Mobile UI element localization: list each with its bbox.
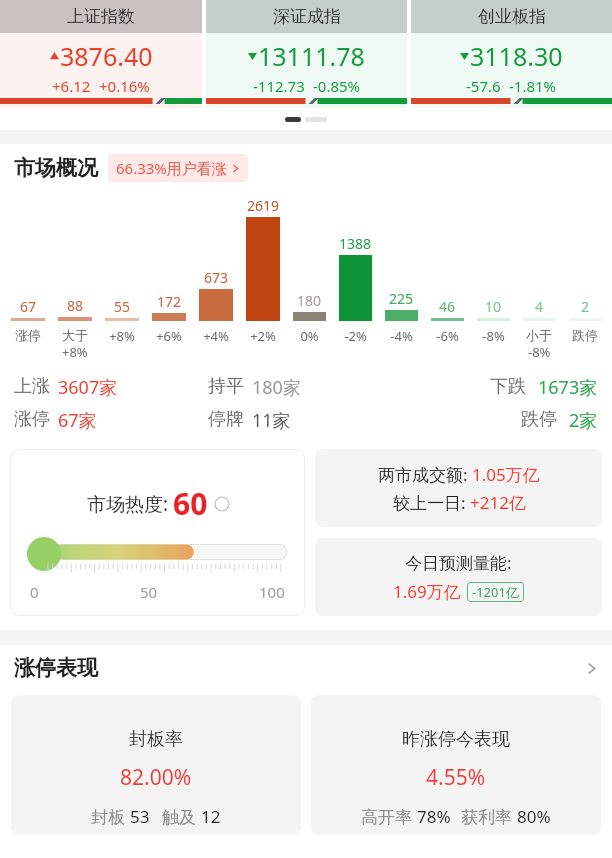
staticText: 市场热度: <box>87 491 169 517</box>
staticText: +4% <box>203 327 229 345</box>
staticText: 深证成指 <box>273 6 341 27</box>
staticText: 跌停 <box>572 327 598 343</box>
staticText: -6% <box>436 327 459 345</box>
staticText: -1201亿 <box>472 583 519 601</box>
staticText: 3876.40 <box>60 39 153 73</box>
staticText: 12 <box>201 805 221 828</box>
staticText: 大于 <box>62 327 88 343</box>
staticText: -112.73 <box>253 76 305 96</box>
staticText: 今日预测量能: <box>405 551 512 574</box>
staticText: 3118.30 <box>470 39 563 73</box>
staticText: 60 <box>173 483 208 524</box>
staticText: 3607家 <box>58 375 118 400</box>
staticText: -2% <box>344 327 367 345</box>
button[interactable]: 深证成指 <box>206 0 407 108</box>
staticText: 180家 <box>252 375 301 400</box>
staticText: -8% <box>482 327 505 345</box>
other: 说明 <box>215 497 229 511</box>
button[interactable]: 封板率 <box>11 695 301 835</box>
staticText: 55 <box>114 297 131 316</box>
staticText: 触及 <box>162 805 201 828</box>
staticText: 80% <box>517 805 551 828</box>
staticText: 2家 <box>569 408 598 433</box>
button[interactable]: 上证指数 <box>0 0 202 108</box>
staticText: +6% <box>156 327 182 345</box>
staticText: 涨停 <box>14 408 50 431</box>
staticText: -8% <box>528 343 551 361</box>
button[interactable]: 两市成交额: <box>315 449 602 527</box>
staticText: 1673家 <box>538 375 598 400</box>
staticText: 获利率 <box>461 805 517 828</box>
staticText: 46 <box>439 297 456 316</box>
staticText: 180 <box>297 291 322 310</box>
staticText: 涨停表现 <box>14 655 98 681</box>
staticText: 0% <box>300 327 319 345</box>
staticText: 涨停 <box>15 327 41 343</box>
staticText: 100 <box>259 582 285 602</box>
staticText: 市场概况 <box>14 155 98 181</box>
staticText: 172 <box>157 292 182 311</box>
staticText: 225 <box>389 289 414 308</box>
staticText: 82.00% <box>120 763 192 792</box>
staticText: -4% <box>390 327 413 345</box>
staticText: 上证指数 <box>67 6 135 27</box>
button[interactable]: 创业板指 <box>411 0 612 108</box>
staticText: 13111.78 <box>258 39 365 73</box>
staticText: +8% <box>62 343 88 361</box>
staticText: 53 <box>130 805 150 828</box>
button[interactable]: 今日预测量能: <box>315 538 602 616</box>
staticText: 88 <box>67 296 84 315</box>
staticText: 停牌 <box>208 408 244 431</box>
staticText: 封板率 <box>129 728 183 751</box>
staticText: 50 <box>140 582 158 602</box>
staticText: 67 <box>20 297 37 316</box>
staticText: +212亿 <box>470 491 526 514</box>
staticText: 上涨 <box>14 375 50 398</box>
button[interactable]: 昨涨停今表现 <box>311 695 601 835</box>
staticText: 0 <box>30 582 39 602</box>
staticText: 高开率 <box>361 805 417 828</box>
staticText: 较上一日: <box>393 491 470 514</box>
staticText: 10 <box>485 297 502 316</box>
staticText: -0.85% <box>313 76 361 96</box>
staticText: +6.12 <box>52 76 91 96</box>
button[interactable]: 市场热度: <box>10 449 305 616</box>
staticText: 4 <box>535 297 544 316</box>
button[interactable]: 66.33%用户看涨 <box>108 154 248 182</box>
staticText: +2% <box>250 327 276 345</box>
staticText: 昨涨停今表现 <box>402 728 510 751</box>
button[interactable]: 涨停表现 <box>0 655 612 681</box>
staticText: 跌停 <box>521 408 557 431</box>
staticText: 下跌 <box>490 375 526 398</box>
staticText: 4.55% <box>426 763 486 792</box>
staticText: -57.6 <box>466 76 501 96</box>
staticText: 创业板指 <box>478 6 546 27</box>
staticText: 11家 <box>252 408 291 433</box>
staticText: 1.05万亿 <box>472 463 540 486</box>
staticText: 2619 <box>247 196 280 215</box>
staticText: 小于 <box>526 327 552 343</box>
staticText: +0.16% <box>99 76 150 96</box>
staticText: 67家 <box>58 408 97 433</box>
staticText: 673 <box>204 268 229 287</box>
staticText: 66.33%用户看涨 <box>116 158 227 178</box>
staticText: 78% <box>417 805 451 828</box>
staticText: 2 <box>581 297 590 316</box>
staticText: 封板 <box>91 805 130 828</box>
staticText: 持平 <box>208 375 244 398</box>
staticText: +8% <box>109 327 135 345</box>
staticText: 1.69万亿 <box>393 580 461 603</box>
staticText: 两市成交额: <box>378 463 472 486</box>
staticText: 1388 <box>339 234 372 253</box>
staticText: -1.81% <box>509 76 557 96</box>
